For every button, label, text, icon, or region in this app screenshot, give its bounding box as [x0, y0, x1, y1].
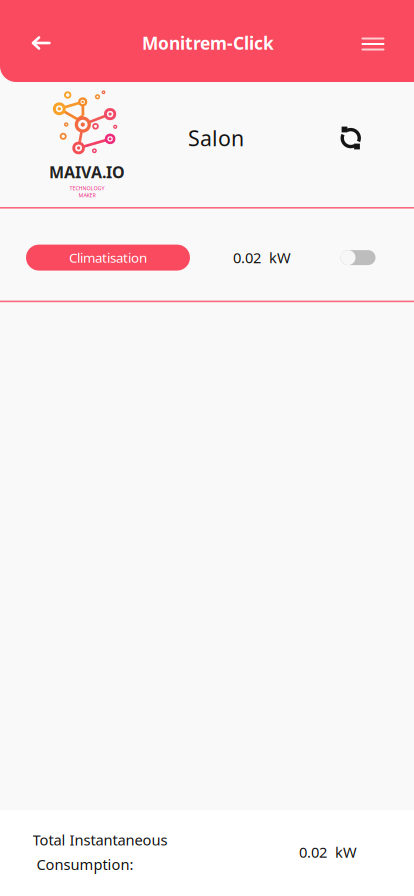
button[interactable]: Menu [0, 0, 414, 82]
staticText: Monitrem-Click [142, 31, 274, 54]
staticText: Climatisation [69, 249, 147, 266]
staticText: Consumption: [32, 854, 133, 874]
staticText: MAIVA.IO [49, 161, 125, 182]
staticText: 0.02 kW [299, 842, 357, 862]
staticText: Salon [188, 124, 244, 152]
staticText: TECHNOLOGY [69, 184, 104, 192]
button[interactable]: Refresh [0, 82, 414, 207]
button[interactable]: Back [0, 0, 414, 82]
button[interactable]: Climatisation power toggle [0, 209, 414, 301]
staticText: Total Instantaneous [32, 830, 167, 849]
button[interactable]: Climatisation [26, 245, 190, 271]
staticText: 0.02 kW [233, 248, 291, 267]
staticText: MAKER [78, 192, 95, 199]
